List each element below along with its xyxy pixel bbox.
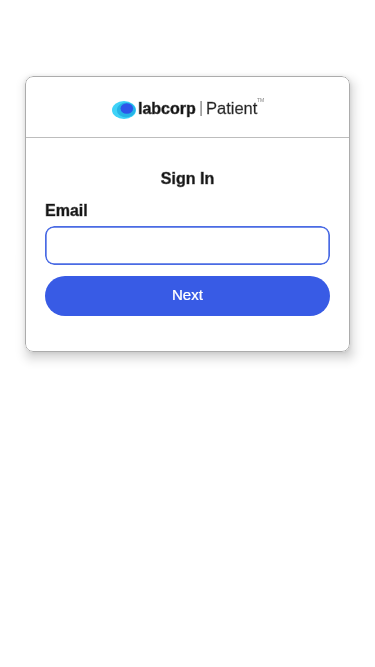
staticText: labcorp bbox=[138, 100, 196, 118]
other: Labcorp logo bbox=[112, 101, 136, 119]
staticText: labcorp bbox=[138, 100, 196, 118]
staticText: Patient bbox=[206, 99, 258, 117]
staticText: Sign In bbox=[25, 170, 350, 188]
button[interactable]: Next bbox=[45, 276, 330, 316]
staticText: Patient bbox=[206, 99, 258, 117]
staticText: | bbox=[199, 99, 204, 117]
button[interactable]: Email input field bbox=[45, 226, 330, 265]
staticText: Sign In bbox=[25, 170, 350, 188]
staticText: TM bbox=[257, 97, 265, 103]
staticText: Email bbox=[45, 202, 88, 220]
staticText: Email bbox=[45, 202, 88, 220]
staticText: Next bbox=[172, 286, 203, 303]
